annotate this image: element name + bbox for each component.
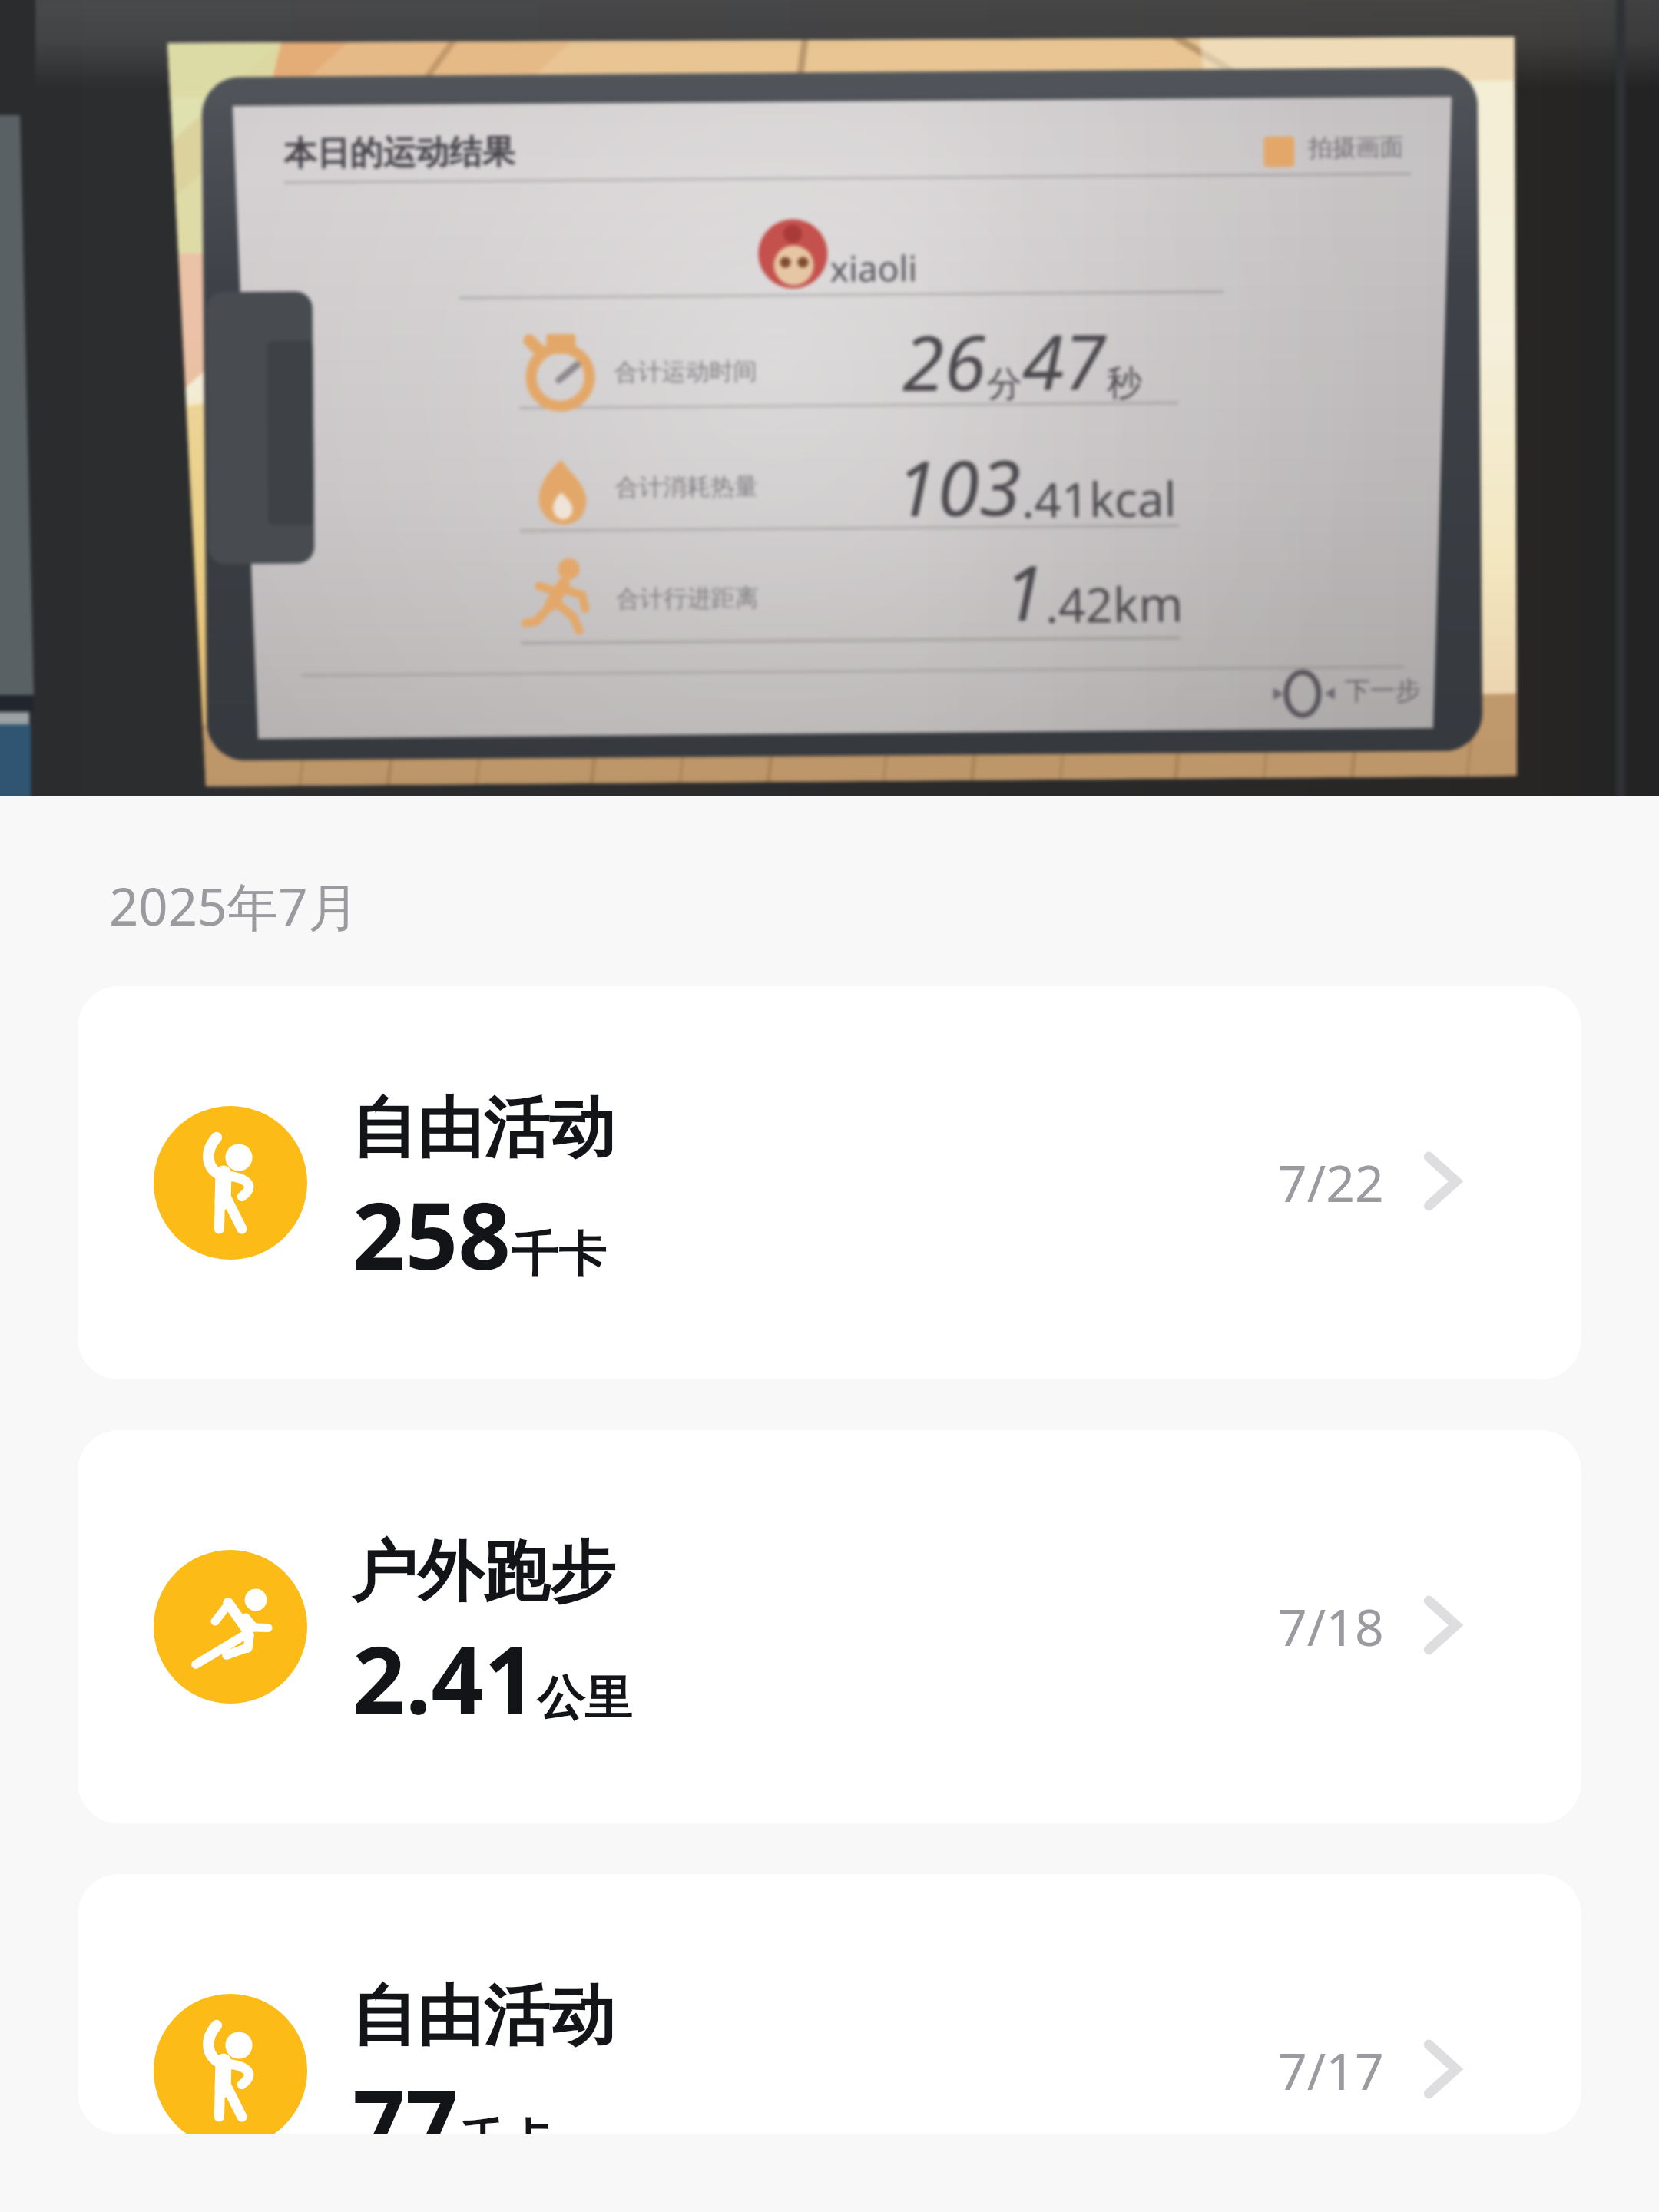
staticText: 千卡 [511, 1224, 606, 1284]
staticText: 7/22 [1278, 1147, 1384, 1217]
staticText: 本日的运动结果 [284, 131, 515, 175]
staticText: 自由活动 [351, 1975, 615, 2058]
staticText: 自由活动 [351, 1087, 615, 1170]
other: Open details [1423, 1152, 1463, 1210]
staticText: 下一步 [1345, 674, 1421, 707]
staticText: 2025年7月 [109, 870, 359, 941]
other: Open details [1423, 1596, 1463, 1654]
staticText: kcal [1089, 466, 1177, 531]
other: Open details [1423, 2040, 1463, 2098]
staticText: 分 [987, 362, 1022, 407]
staticText: 合计行进距离 [616, 583, 759, 614]
staticText: 拍摄画面 [1308, 132, 1404, 163]
staticText: 公里 [537, 1668, 632, 1728]
staticText: 7/18 [1278, 1591, 1384, 1661]
staticText: 258 [353, 1171, 511, 1296]
staticText: .42 [1045, 572, 1113, 637]
staticText: 千卡 [459, 2112, 554, 2134]
staticText: 7/17 [1278, 2035, 1384, 2104]
staticText: 2.41 [353, 1615, 537, 1740]
staticText: 77 [353, 2059, 459, 2134]
staticText: 合计运动时间 [614, 356, 757, 387]
staticText: 26 [902, 309, 987, 413]
button[interactable]: 自由活动 [78, 986, 1581, 1379]
staticText: 合计消耗热量 [615, 471, 758, 502]
staticText: xiaoli [830, 244, 918, 293]
staticText: .41 [1021, 467, 1089, 532]
staticText: 户外跑步 [351, 1531, 615, 1614]
button[interactable]: Workout result photo [0, 0, 1659, 796]
staticText: 47 [1022, 308, 1107, 413]
staticText: km [1113, 571, 1184, 636]
staticText: 1 [1003, 539, 1046, 643]
button[interactable]: 户外跑步 [78, 1430, 1581, 1823]
staticText: 秒 [1106, 361, 1142, 406]
button[interactable]: 自由活动 [78, 1874, 1581, 2134]
staticText: 103 [895, 434, 1022, 539]
